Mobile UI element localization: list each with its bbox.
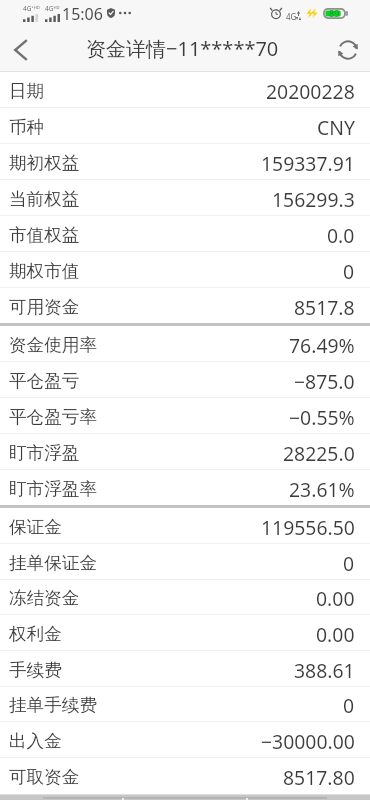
staticText: 出入金 <box>9 730 62 752</box>
staticText: 盯市浮盈率 <box>9 478 97 500</box>
staticText: 资金使用率 <box>9 334 97 356</box>
staticText: 156299.3 <box>272 186 355 212</box>
staticText: 4G⁺ᴴᴰ <box>23 4 40 13</box>
staticText: −30000.00 <box>261 728 355 754</box>
staticText: −875.0 <box>294 368 355 394</box>
staticText: 4G <box>286 11 297 22</box>
staticText: 可用资金 <box>9 296 80 318</box>
staticText: 23.61% <box>289 476 355 502</box>
staticText: 0 <box>343 692 355 718</box>
staticText: 手续费 <box>9 659 62 681</box>
button[interactable]: 冻结资金 <box>0 580 370 615</box>
staticText: 期初权益 <box>9 152 80 174</box>
staticText: 可取资金 <box>9 766 80 788</box>
staticText: 期权市值 <box>9 260 80 282</box>
button[interactable]: 资金使用率 <box>0 326 370 362</box>
button[interactable]: 权利金 <box>0 615 370 651</box>
staticText: 8517.8 <box>294 294 355 320</box>
staticText: 资金详情−11*****70 <box>86 35 279 62</box>
staticText: 保证金 <box>9 516 62 538</box>
button[interactable]: 出入金 <box>0 722 370 758</box>
button[interactable]: 可用资金 <box>0 288 370 323</box>
button[interactable]: 可取资金 <box>0 758 370 793</box>
staticText: 币种 <box>9 116 45 138</box>
button[interactable]: 平仓盈亏 <box>0 362 370 398</box>
button[interactable]: Back <box>0 26 46 72</box>
staticText: 冻结资金 <box>9 587 80 609</box>
staticText: 日期 <box>9 80 45 102</box>
button[interactable]: 期初权益 <box>0 144 370 180</box>
staticText: 388.61 <box>294 657 355 683</box>
staticText: 4Gᴴᴰ <box>45 4 60 13</box>
button[interactable]: 手续费 <box>0 651 370 687</box>
staticText: 89 <box>329 7 340 19</box>
staticText: 28225.0 <box>283 440 355 466</box>
staticText: 20200228 <box>266 78 355 104</box>
button[interactable]: 平仓盈亏率 <box>0 398 370 434</box>
staticText: 市值权益 <box>9 224 80 246</box>
button[interactable]: Refresh <box>324 26 370 72</box>
staticText: 平仓盈亏 <box>9 370 80 392</box>
button[interactable]: 币种 <box>0 108 370 144</box>
button[interactable]: 挂单保证金 <box>0 544 370 580</box>
staticText: 盯市浮盈 <box>9 442 80 464</box>
staticText: 8517.80 <box>283 764 355 790</box>
staticText: 119556.50 <box>261 514 355 540</box>
button[interactable]: 盯市浮盈率 <box>0 470 370 505</box>
button[interactable]: 当前权益 <box>0 180 370 216</box>
staticText: 平仓盈亏率 <box>9 406 97 428</box>
staticText: 0 <box>343 258 355 284</box>
staticText: 159337.91 <box>261 150 355 176</box>
staticText: 0.00 <box>316 585 355 611</box>
button[interactable]: 保证金 <box>0 508 370 544</box>
staticText: 0.00 <box>316 621 355 647</box>
staticText: −0.55% <box>289 404 355 430</box>
staticText: 15:06 <box>62 3 103 25</box>
staticText: 权利金 <box>9 623 62 645</box>
button[interactable]: 盯市浮盈 <box>0 434 370 470</box>
button[interactable]: 市值权益 <box>0 216 370 252</box>
staticText: 当前权益 <box>9 188 80 210</box>
staticText: 0.0 <box>327 222 355 248</box>
staticText: 0 <box>343 550 355 576</box>
button[interactable]: 挂单手续费 <box>0 687 370 722</box>
button[interactable]: 期权市值 <box>0 252 370 288</box>
staticText: CNY <box>317 114 355 140</box>
staticText: 76.49% <box>289 332 355 358</box>
button[interactable]: 日期 <box>0 72 370 108</box>
staticText: 挂单保证金 <box>9 552 97 574</box>
staticText: 挂单手续费 <box>9 694 97 716</box>
